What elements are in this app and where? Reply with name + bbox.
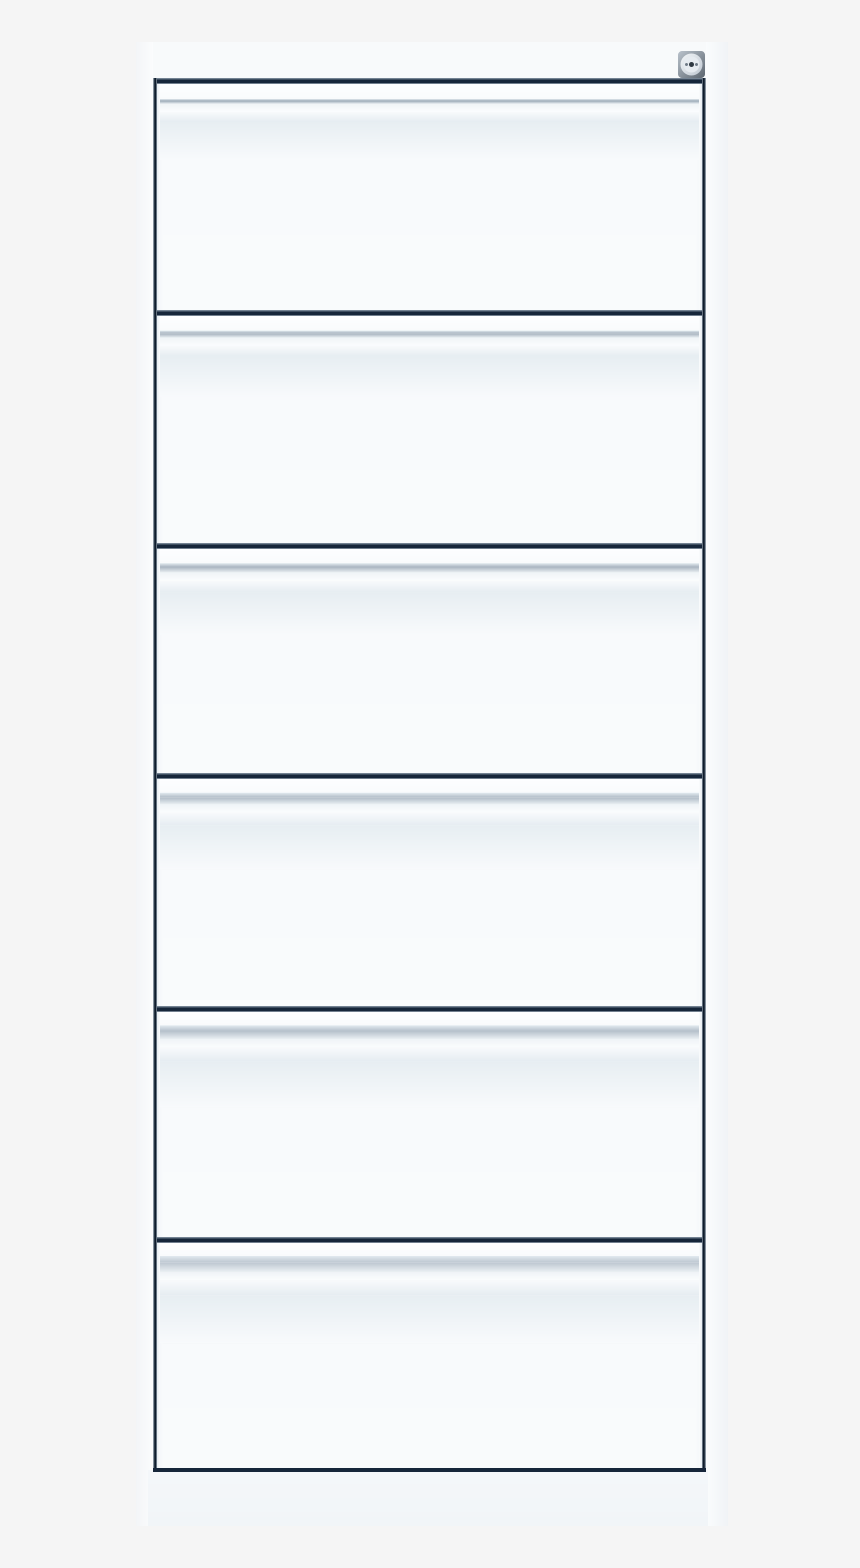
button[interactable]: Cabinet lock [678, 51, 705, 78]
button[interactable]: Drawer 3 [153, 543, 706, 773]
button[interactable]: Drawer 4 [153, 773, 706, 1006]
button[interactable]: Drawer 1 [153, 78, 706, 310]
button[interactable]: Drawer 6 [153, 1237, 706, 1472]
button[interactable]: Drawer 2 [153, 310, 706, 543]
button[interactable]: Drawer 5 [153, 1006, 706, 1237]
